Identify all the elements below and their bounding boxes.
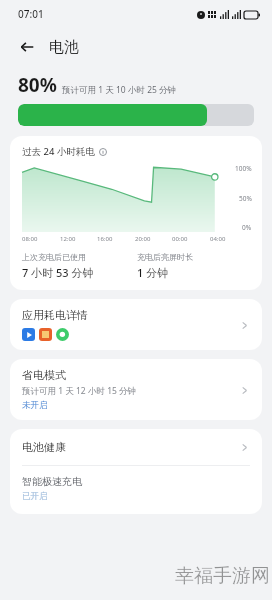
button[interactable]: 过去 24 小时耗电	[10, 136, 262, 290]
staticText: 50%	[239, 194, 252, 203]
staticText: 已开启	[22, 491, 48, 502]
staticText: 电池健康	[22, 440, 236, 454]
staticText: 0%	[242, 223, 252, 232]
staticText: 充电后亮屏时长	[137, 252, 193, 262]
staticText: 12:00	[60, 235, 76, 243]
staticText: 未开启	[22, 400, 48, 411]
button[interactable]: 电池健康	[10, 429, 262, 465]
button[interactable]: 智能极速充电	[10, 466, 262, 514]
staticText: 00:00	[172, 235, 188, 243]
staticText: 04:00	[210, 235, 226, 243]
staticText: 过去 24 小时耗电	[22, 145, 95, 158]
staticText: 上次充电后已使用	[22, 252, 86, 262]
staticText: 16:00	[97, 235, 113, 243]
staticText: 80%	[18, 72, 57, 98]
staticText: 100%	[235, 164, 252, 173]
staticText: 7 小时 53 分钟	[22, 265, 94, 280]
button[interactable]: 应用耗电详情	[10, 299, 262, 350]
staticText: 应用耗电详情	[22, 308, 88, 322]
staticText: 07:01	[18, 7, 44, 21]
staticText: 省电模式	[22, 368, 66, 382]
staticText: 预计可用 1 天 10 小时 25 分钟	[62, 84, 177, 96]
staticText: 预计可用 1 天 12 小时 15 分钟	[22, 385, 137, 397]
staticText: 1 分钟	[137, 265, 169, 280]
staticText: 电池	[49, 38, 79, 57]
staticText: 08:00	[22, 235, 38, 243]
staticText: 20:00	[135, 235, 151, 243]
staticText: 智能极速充电	[22, 475, 82, 488]
staticText: 幸福手游网	[175, 564, 270, 588]
button[interactable]: 省电模式	[10, 359, 262, 420]
button[interactable]: Back	[14, 34, 40, 60]
